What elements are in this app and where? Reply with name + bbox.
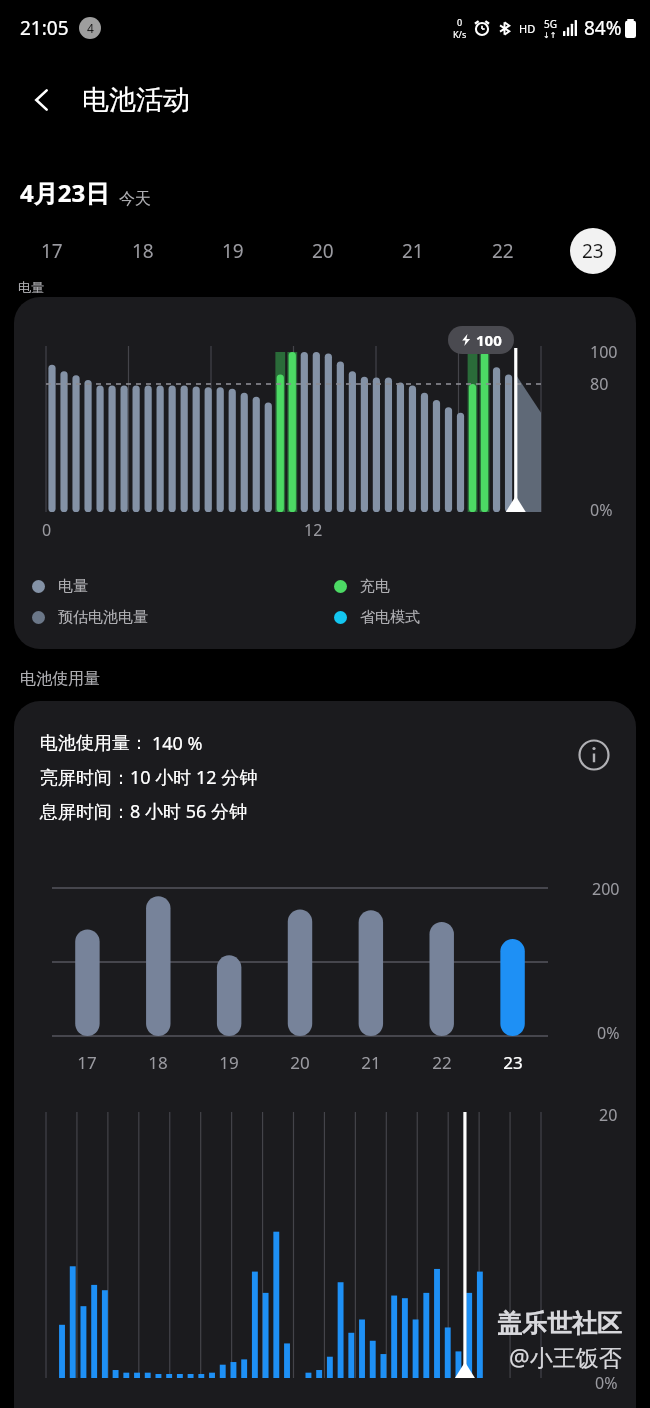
staticText: 23 xyxy=(582,238,604,264)
staticText: 17 xyxy=(77,1051,97,1074)
staticText: 18 xyxy=(132,238,154,264)
staticText: 电池使用量 xyxy=(20,669,100,689)
staticText: 0% xyxy=(597,1022,620,1044)
staticText: 140 % xyxy=(152,731,203,756)
staticText: 22 xyxy=(492,238,514,264)
staticText: 100 xyxy=(476,330,502,350)
staticText: 亮屏时间：10 小时 12 分钟 xyxy=(40,765,258,790)
staticText: 0% xyxy=(595,1372,618,1394)
staticText: 20 xyxy=(599,1104,618,1126)
staticText: 电量 xyxy=(58,577,88,596)
staticText: 电量 xyxy=(18,279,44,295)
button[interactable]: 17 xyxy=(6,227,97,275)
staticText: ↓↑ xyxy=(543,31,557,40)
staticText: HD xyxy=(519,21,536,36)
staticText: 18 xyxy=(148,1051,168,1074)
staticText: 电池使用量： xyxy=(40,732,148,755)
staticText: 0 xyxy=(457,16,463,28)
staticText: 21:05 xyxy=(20,15,69,41)
staticText: 21 xyxy=(402,238,424,264)
button[interactable]: 22 xyxy=(458,227,548,275)
staticText: 19 xyxy=(219,1051,239,1074)
staticText: 22 xyxy=(432,1051,452,1074)
staticText: K/s xyxy=(453,28,467,40)
button[interactable]: 20 xyxy=(278,227,368,275)
staticText: 0% xyxy=(590,499,613,521)
staticText: 充电 xyxy=(360,577,390,596)
staticText: 84% xyxy=(584,15,622,41)
staticText: 17 xyxy=(41,238,63,264)
staticText: 23 xyxy=(503,1051,523,1074)
staticText: 5G xyxy=(544,17,557,31)
staticText: 息屏时间：8 小时 56 分钟 xyxy=(40,799,247,824)
staticText: 预估电池电量 xyxy=(58,608,148,627)
button[interactable]: 23 xyxy=(548,227,638,275)
staticText: 盖乐世社区 xyxy=(497,1308,622,1339)
staticText: 20 xyxy=(312,238,334,264)
staticText: 100 xyxy=(590,341,618,363)
button[interactable]: 21 xyxy=(368,227,458,275)
staticText: 4 xyxy=(87,20,94,36)
button[interactable]: Info xyxy=(572,733,616,777)
staticText: 19 xyxy=(222,238,244,264)
staticText: 电池活动 xyxy=(82,83,190,117)
staticText: 省电模式 xyxy=(360,608,420,627)
staticText: 今天 xyxy=(119,189,151,209)
staticText: 200 xyxy=(592,878,620,900)
button[interactable]: 19 xyxy=(188,227,278,275)
button[interactable]: 18 xyxy=(97,227,188,275)
staticText: @小王饭否 xyxy=(509,1341,622,1372)
staticText: 0 xyxy=(42,519,52,541)
button[interactable]: Back xyxy=(14,72,70,128)
button[interactable]: 100 xyxy=(14,297,636,649)
staticText: 20 xyxy=(290,1051,310,1074)
staticText: 80 xyxy=(590,373,609,395)
staticText: 4月23日 xyxy=(20,176,110,209)
staticText: 12 xyxy=(304,519,323,541)
staticText: 21 xyxy=(361,1051,381,1074)
